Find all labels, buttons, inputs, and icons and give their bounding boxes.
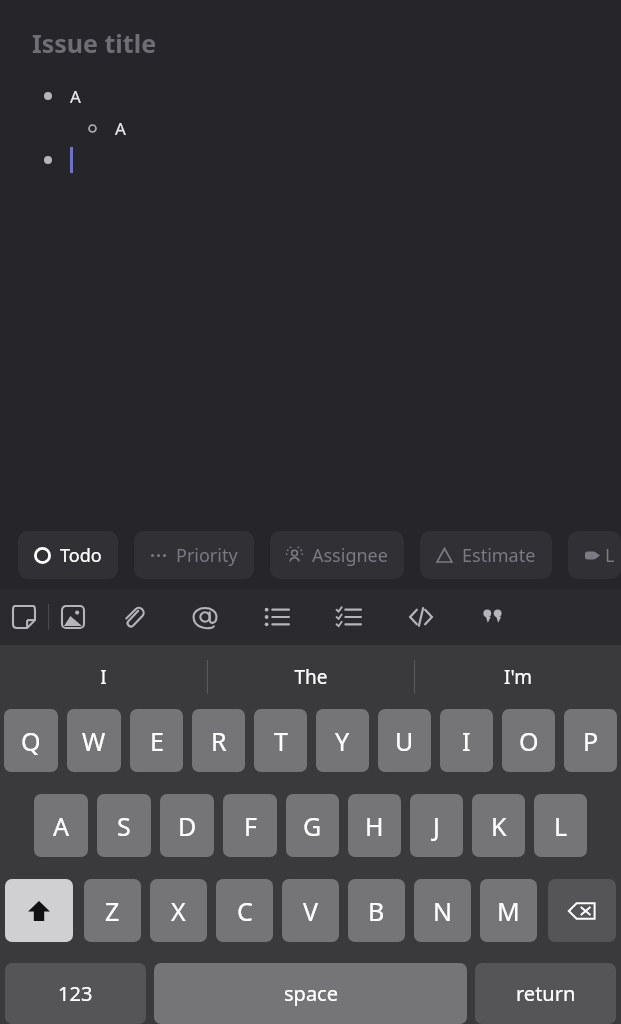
button[interactable]: Attach — [97, 589, 169, 645]
button[interactable]: Code — [385, 589, 457, 645]
button[interactable]: Y — [316, 709, 369, 772]
staticText: P — [583, 724, 599, 758]
staticText: V — [303, 894, 319, 928]
staticText: Issue title — [32, 26, 157, 60]
button[interactable]: J — [410, 794, 463, 857]
staticText: A — [115, 117, 126, 140]
button[interactable]: Sticker — [0, 589, 48, 645]
staticText: B — [368, 894, 385, 928]
staticText: Estimate — [462, 543, 536, 568]
staticText: A — [70, 85, 81, 108]
button[interactable]: K — [472, 794, 525, 857]
staticText: N — [433, 894, 453, 928]
button[interactable]: I'm — [415, 645, 621, 709]
button[interactable]: Bulleted list — [241, 589, 313, 645]
button[interactable]: Shift — [5, 879, 73, 942]
button[interactable]: Estimate — [420, 531, 552, 579]
staticText: M — [497, 894, 520, 928]
staticText: 123 — [58, 980, 93, 1007]
button[interactable]: N — [414, 879, 471, 942]
button[interactable]: O — [502, 709, 555, 772]
button[interactable]: Priority — [134, 531, 254, 579]
button[interactable]: M — [480, 879, 537, 942]
staticText: S — [117, 809, 131, 843]
staticText: O — [519, 724, 539, 758]
button[interactable]: U — [378, 709, 431, 772]
staticText: F — [244, 809, 257, 843]
button[interactable]: R — [192, 709, 245, 772]
button[interactable]: S — [97, 794, 151, 857]
button[interactable]: 123 — [5, 963, 146, 1024]
button[interactable]: A — [34, 794, 88, 857]
staticText: X — [171, 894, 186, 928]
button[interactable]: Z — [84, 879, 141, 942]
staticText: R — [211, 724, 227, 758]
button[interactable]: B — [348, 879, 405, 942]
staticText: Q — [21, 724, 41, 758]
button[interactable]: Assignee — [270, 531, 404, 579]
button[interactable]: Mention — [169, 589, 241, 645]
button[interactable]: Backspace — [548, 879, 616, 942]
button[interactable]: Checklist — [313, 589, 385, 645]
button[interactable]: T — [254, 709, 307, 772]
staticText: return — [516, 980, 576, 1007]
button[interactable]: L — [534, 794, 587, 857]
staticText: T — [274, 724, 288, 758]
button[interactable]: P — [564, 709, 617, 772]
staticText: space — [284, 980, 338, 1007]
button[interactable]: return — [475, 963, 616, 1024]
staticText: Todo — [60, 543, 102, 568]
button[interactable]: G — [286, 794, 339, 857]
staticText: Priority — [176, 543, 238, 568]
button[interactable]: E — [130, 709, 183, 772]
staticText: Assignee — [312, 543, 388, 568]
staticText: I — [462, 724, 471, 758]
button[interactable]: Todo — [18, 531, 118, 579]
button[interactable]: X — [150, 879, 207, 942]
button[interactable]: I — [440, 709, 493, 772]
button[interactable]: H — [348, 794, 401, 857]
staticText: L — [554, 809, 568, 843]
staticText: C — [237, 894, 253, 928]
staticText: A — [53, 809, 69, 843]
button[interactable]: L — [568, 531, 621, 579]
button[interactable]: C — [216, 879, 273, 942]
button[interactable]: Q — [4, 709, 58, 772]
button[interactable]: Quote — [457, 589, 529, 645]
button[interactable]: Image — [49, 589, 97, 645]
button[interactable]: V — [282, 879, 339, 942]
button[interactable]: The — [208, 645, 414, 709]
button[interactable]: D — [160, 794, 214, 857]
button[interactable]: F — [223, 794, 277, 857]
button[interactable]: W — [67, 709, 121, 772]
staticText: G — [303, 809, 322, 843]
staticText: I — [100, 664, 107, 690]
staticText: I'm — [504, 664, 532, 690]
staticText: J — [433, 809, 440, 843]
staticText: W — [82, 724, 106, 758]
staticText: D — [178, 809, 197, 843]
staticText: Z — [105, 894, 120, 928]
staticText: E — [150, 724, 164, 758]
staticText: The — [294, 664, 328, 690]
staticText: Y — [335, 724, 350, 758]
button[interactable]: space — [154, 963, 467, 1024]
button[interactable]: I — [0, 645, 207, 709]
staticText: K — [491, 809, 507, 843]
staticText: U — [395, 724, 414, 758]
staticText: H — [365, 809, 384, 843]
